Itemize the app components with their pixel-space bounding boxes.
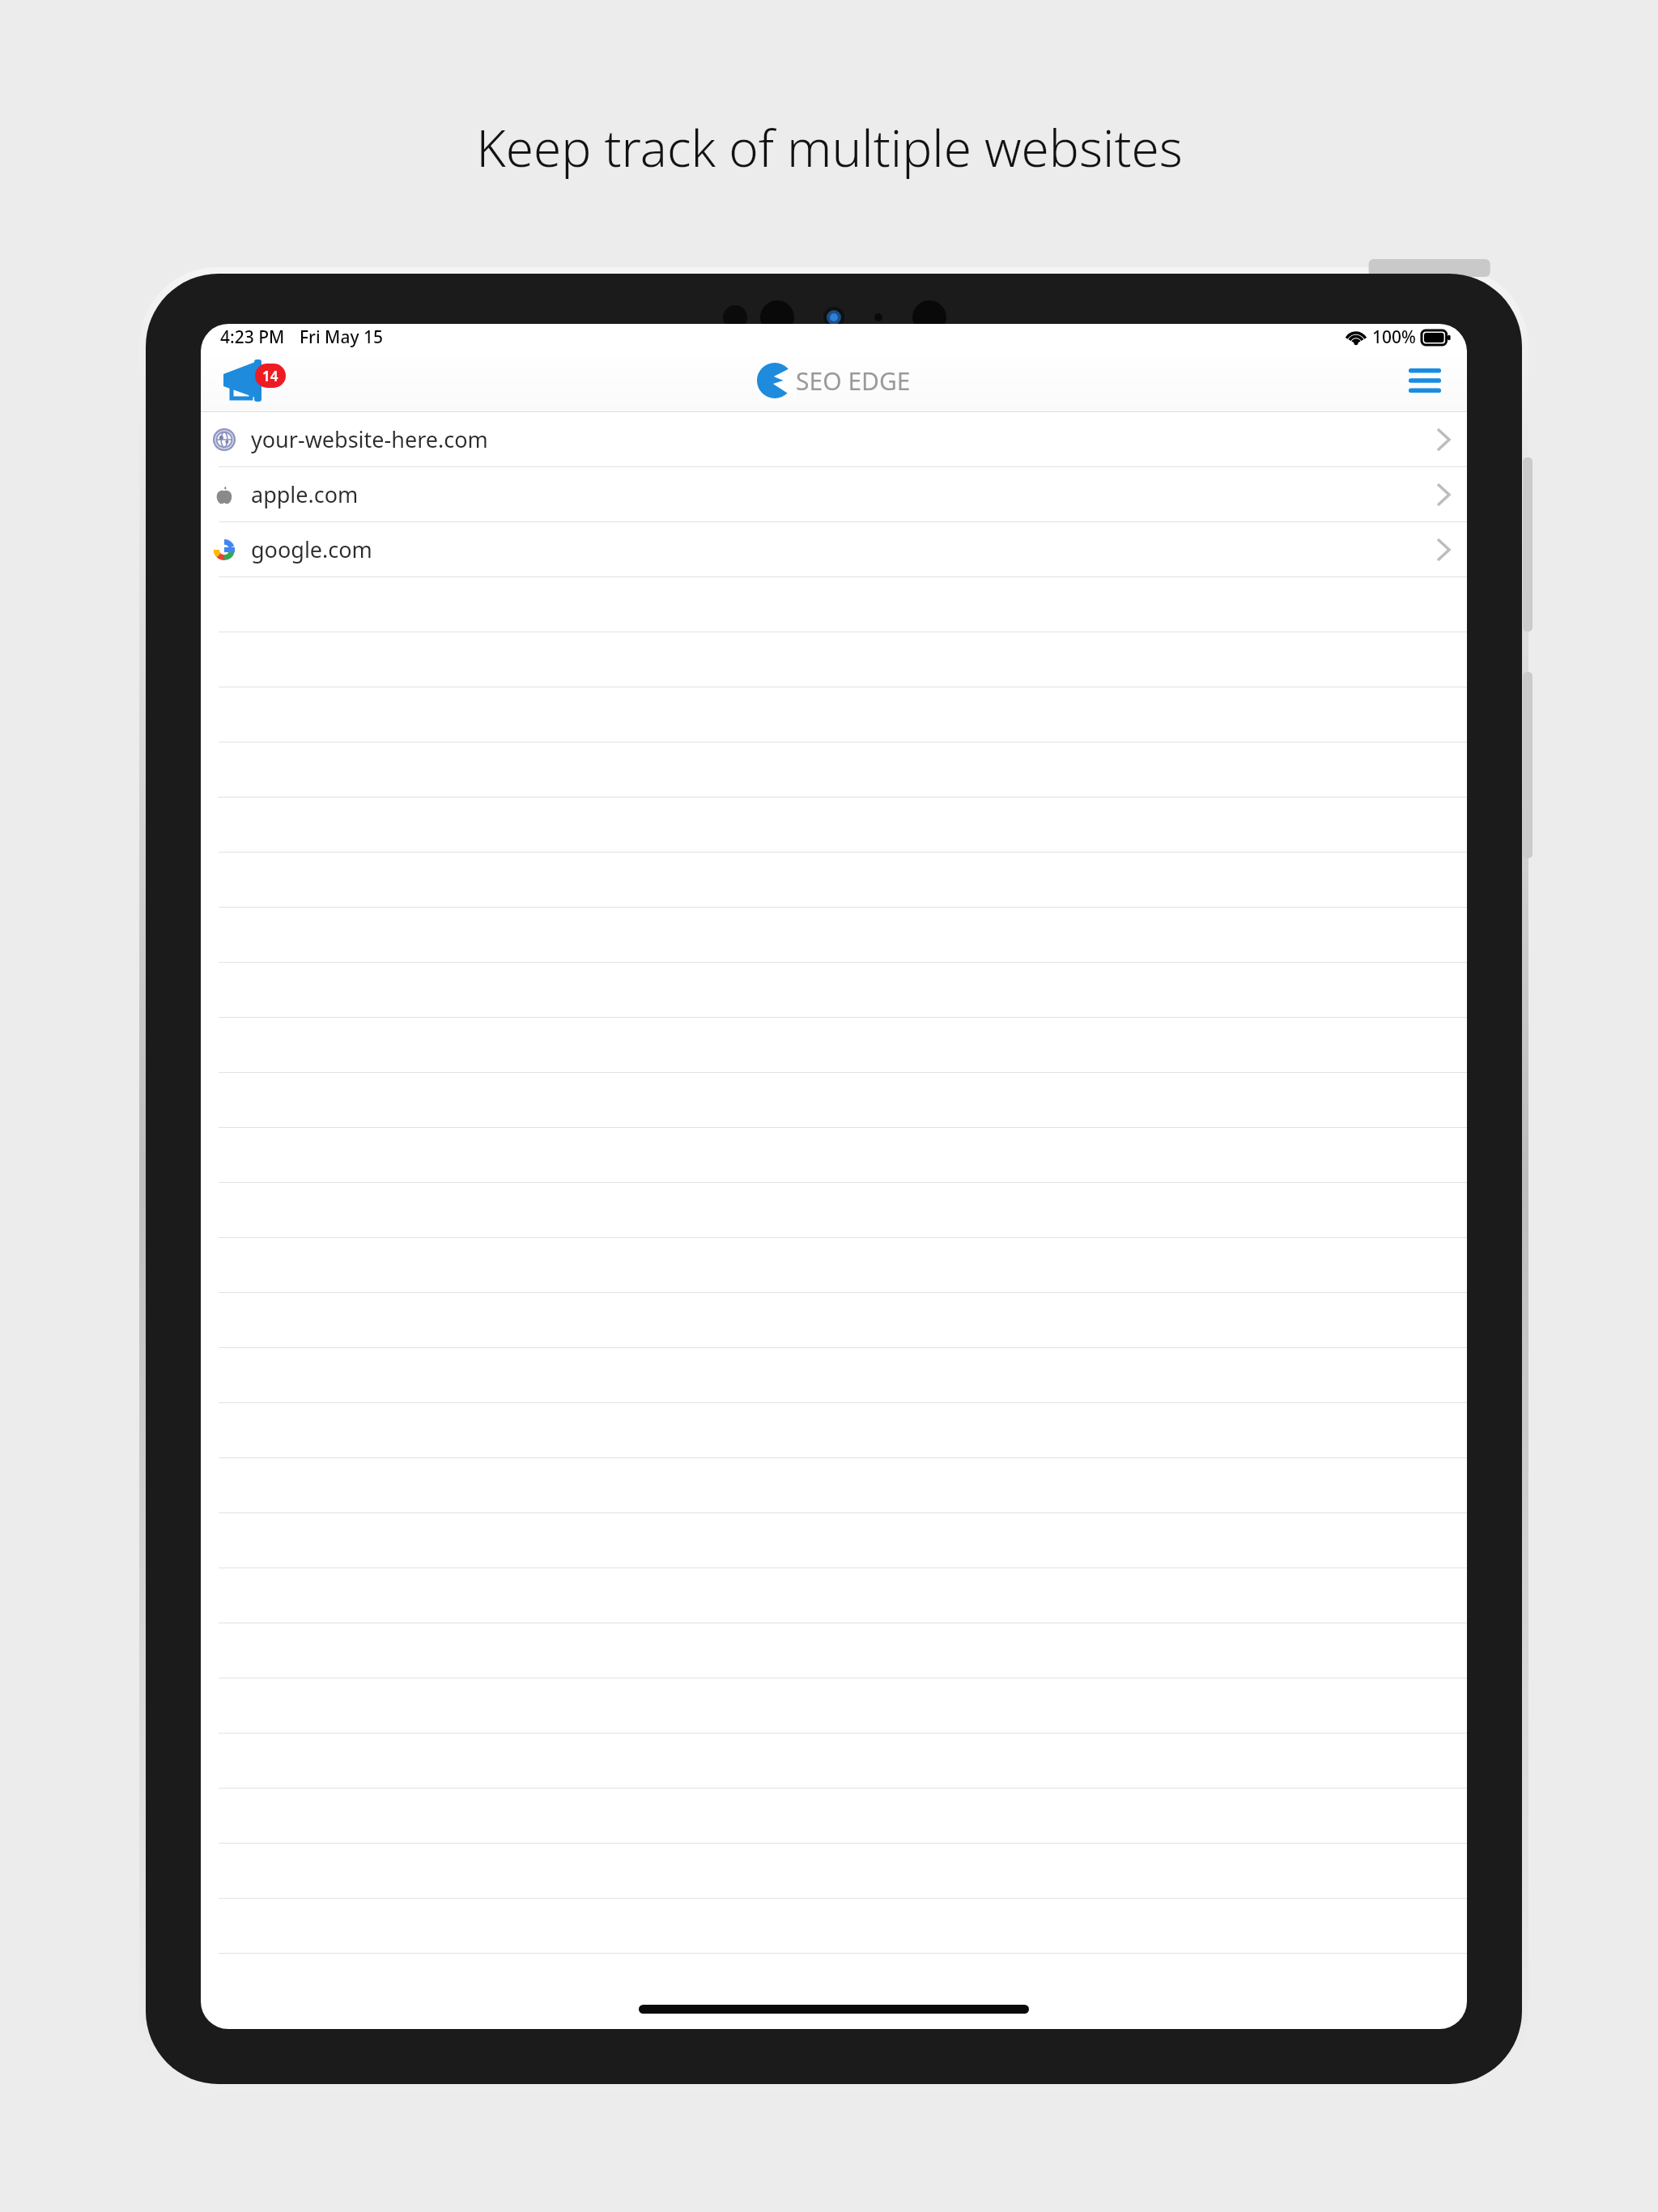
button[interactable]: apple.com [201, 467, 1467, 521]
button[interactable]: google.com [201, 522, 1467, 576]
button[interactable]: Notifications [212, 355, 293, 406]
staticText: 4:23 PM [220, 325, 285, 349]
button[interactable]: your-website-here.com [201, 412, 1467, 466]
staticText: SEO EDGE [796, 364, 911, 398]
staticText: Keep track of multiple websites [476, 113, 1183, 181]
button[interactable]: Menu [1401, 356, 1449, 405]
staticText: Fri May 15 [300, 325, 383, 349]
staticText: 14 [262, 367, 278, 385]
staticText: google.com [251, 534, 372, 564]
staticText: apple.com [251, 479, 359, 509]
staticText: 100% [1372, 325, 1416, 349]
staticText: your-website-here.com [251, 424, 488, 454]
